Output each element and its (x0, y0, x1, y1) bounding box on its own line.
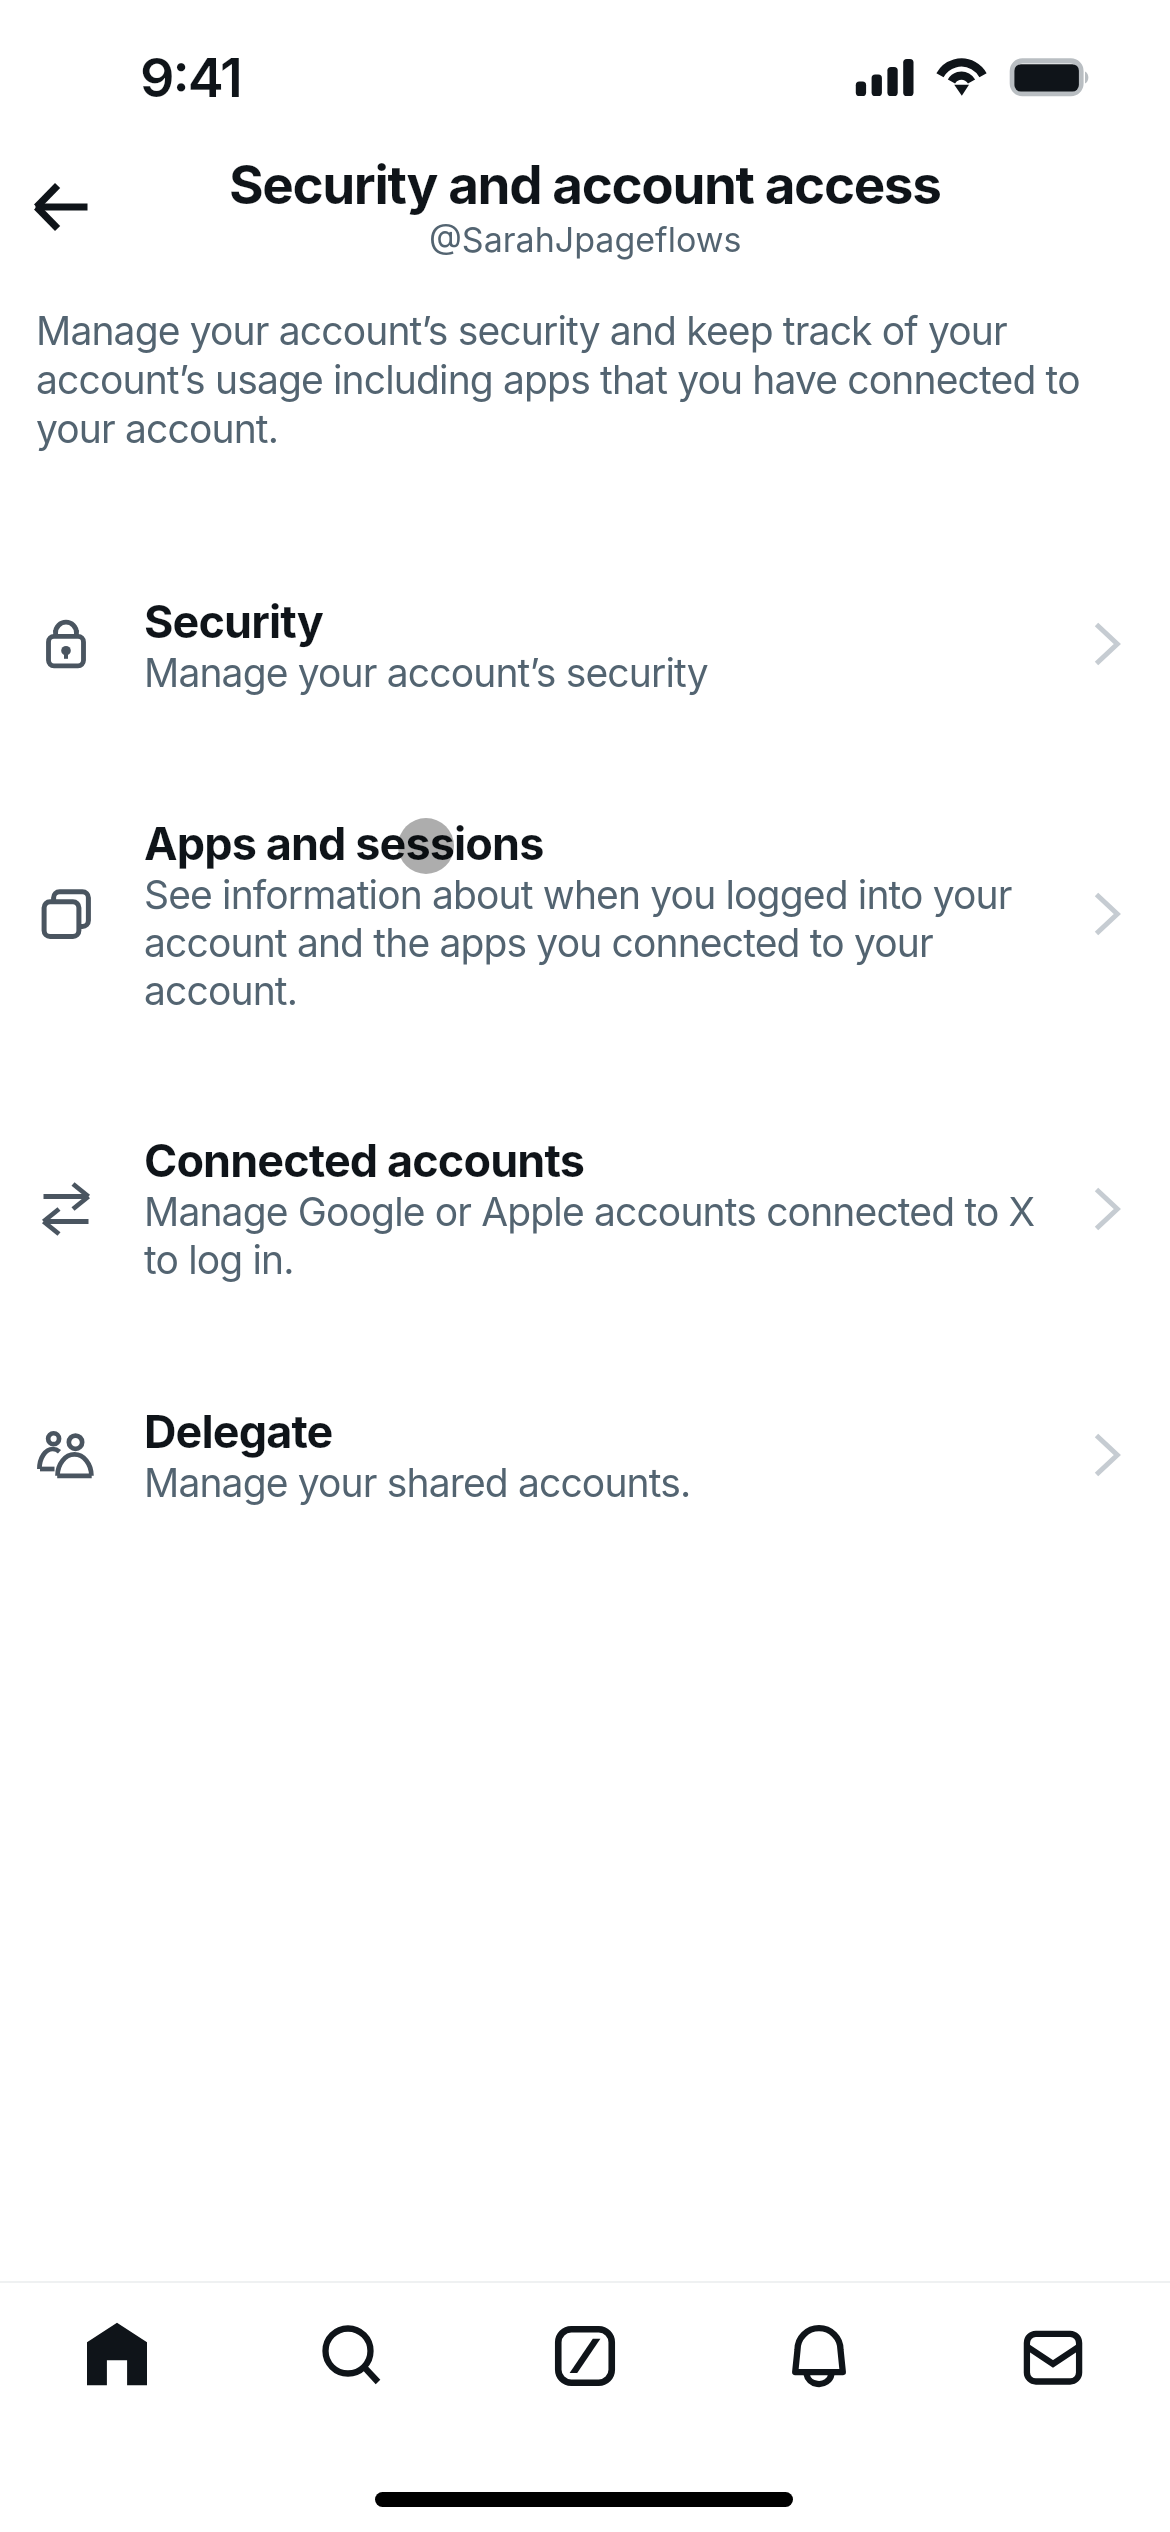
button[interactable]: Home (0, 2283, 234, 2429)
staticText: Security (144, 595, 323, 649)
button[interactable]: Apps and sessions (0, 789, 1170, 1043)
button[interactable]: Security (0, 567, 1170, 725)
staticText: Manage Google or Apple accounts connecte… (144, 1188, 1069, 1284)
staticText: Manage your account’s security (144, 649, 708, 697)
staticText: Apps and sessions (144, 817, 544, 871)
staticText: @SarahJpageflows (429, 217, 742, 261)
button[interactable]: Grok (468, 2283, 702, 2429)
staticText: Manage your account’s security and keep … (36, 306, 1116, 453)
button[interactable]: Connected accounts (0, 1106, 1170, 1312)
button[interactable]: Messages (936, 2283, 1170, 2429)
staticText: Security and account access (229, 154, 941, 216)
button[interactable]: Notifications (702, 2283, 936, 2429)
staticText: Connected accounts (144, 1134, 584, 1188)
staticText: See information about when you logged in… (144, 871, 1069, 1015)
staticText: 9:41 (140, 49, 241, 109)
button[interactable]: Delegate (0, 1377, 1170, 1535)
staticText: Delegate (144, 1405, 333, 1459)
button[interactable]: Back (13, 159, 109, 255)
staticText: Manage your shared accounts. (144, 1459, 691, 1507)
button[interactable]: Search (234, 2283, 468, 2429)
